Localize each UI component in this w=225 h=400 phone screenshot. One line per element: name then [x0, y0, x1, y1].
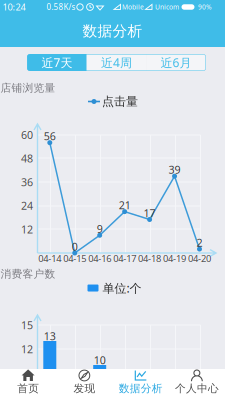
staticText: 个人中心: [175, 382, 219, 395]
staticText: 48: [21, 151, 33, 166]
staticText: 消费客户数: [0, 267, 55, 280]
staticText: 04-15: [63, 252, 86, 265]
button[interactable]: 近6月: [146, 54, 206, 71]
button[interactable]: 发现: [56, 369, 112, 400]
staticText: 店铺浏览量: [0, 81, 55, 94]
staticText: 2: [196, 235, 202, 250]
staticText: 56: [44, 129, 56, 143]
staticText: 04-14: [38, 252, 61, 265]
staticText: 60: [21, 128, 33, 142]
staticText: Mobile: [122, 3, 144, 11]
button[interactable]: 首页: [0, 369, 56, 400]
staticText: Unicom: [155, 3, 179, 11]
button[interactable]: 数据分析: [112, 369, 169, 400]
staticText: 39: [169, 163, 181, 177]
staticText: 9: [97, 222, 103, 236]
staticText: 12: [21, 222, 33, 236]
staticText: 04-20: [188, 252, 211, 265]
button[interactable]: 个人中心: [169, 369, 225, 400]
staticText: 数据分析: [82, 22, 142, 40]
staticText: 36: [21, 175, 33, 189]
staticText: 24: [21, 199, 33, 213]
staticText: 04-19: [163, 252, 186, 265]
staticText: 单位:个: [102, 280, 141, 296]
staticText: 近7天: [41, 54, 72, 70]
button[interactable]: 数据分析: [0, 15, 225, 47]
staticText: 04-17: [113, 252, 136, 265]
staticText: 17: [144, 206, 156, 220]
staticText: 21: [119, 198, 131, 212]
staticText: 12: [21, 342, 33, 356]
staticText: 10: [94, 353, 106, 367]
staticText: 0.58K/s: [46, 2, 75, 12]
staticText: 数据分析: [119, 382, 163, 395]
button[interactable]: 近7天: [27, 54, 87, 71]
staticText: 近4周: [101, 54, 132, 70]
staticText: 10:24: [2, 1, 25, 13]
staticText: 13: [44, 329, 56, 343]
staticText: 近6月: [161, 54, 192, 70]
button[interactable]: 近4周: [87, 54, 146, 71]
staticText: 04-18: [138, 252, 161, 265]
staticText: 90%: [198, 3, 212, 11]
staticText: 发现: [73, 382, 95, 395]
staticText: 15: [21, 318, 33, 332]
staticText: 点击量: [102, 94, 138, 109]
staticText: 04-16: [88, 252, 111, 265]
staticText: 0: [72, 239, 78, 254]
staticText: 首页: [17, 382, 39, 395]
